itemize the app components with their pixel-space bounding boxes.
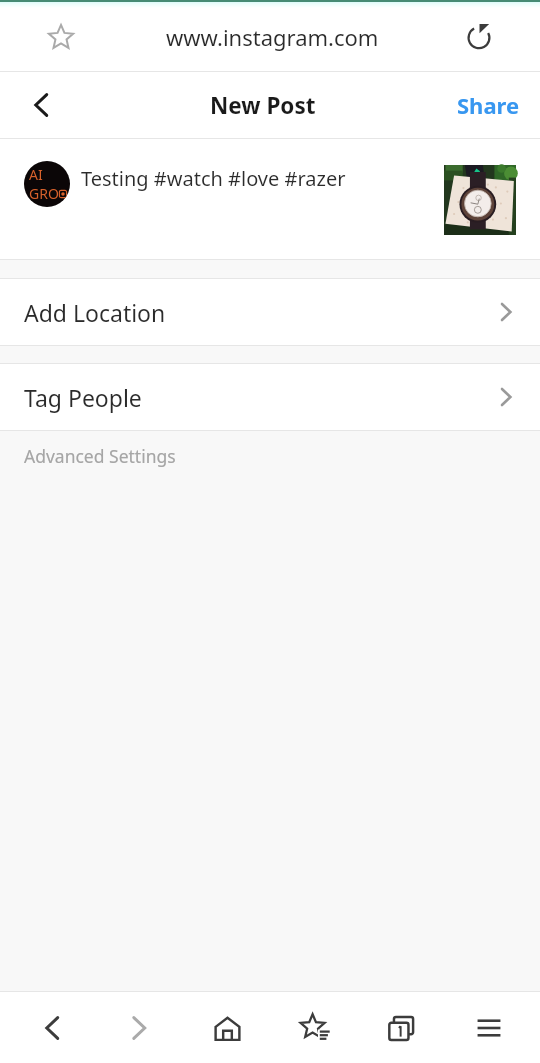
button[interactable]: AI xyxy=(0,139,540,259)
button[interactable]: Share xyxy=(457,90,520,120)
staticText: Share xyxy=(457,90,520,120)
button[interactable]: Add Location xyxy=(0,279,540,345)
button[interactable]: Menu xyxy=(458,997,520,1059)
staticText: www.instagram.com xyxy=(166,22,379,52)
staticText: AI xyxy=(29,165,43,184)
staticText: New Post xyxy=(210,90,316,121)
button[interactable]: Bookmarks xyxy=(284,997,346,1059)
button[interactable]: Reload xyxy=(455,13,503,61)
button[interactable]: Tabs xyxy=(370,997,432,1059)
button[interactable]: Back xyxy=(16,80,66,130)
staticText: Tag People xyxy=(24,382,142,413)
button[interactable]: Bookmark xyxy=(37,13,85,61)
button[interactable]: Back xyxy=(21,997,83,1059)
staticText: Add Location xyxy=(24,297,166,328)
staticText: Testing #watch #love #razer xyxy=(81,165,444,192)
staticText: Advanced Settings xyxy=(24,444,176,468)
button[interactable]: Tag People xyxy=(0,364,540,430)
staticText: GRO xyxy=(29,184,59,203)
button[interactable]: Home xyxy=(196,997,258,1059)
button[interactable]: Forward xyxy=(108,997,170,1059)
